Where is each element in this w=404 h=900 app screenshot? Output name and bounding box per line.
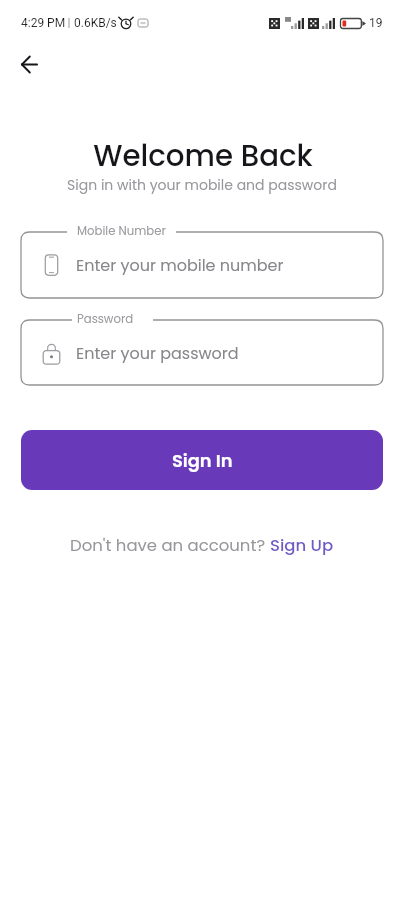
staticText: Enter your mobile number xyxy=(76,254,284,276)
button[interactable]: Sign In xyxy=(21,430,383,490)
staticText: Password xyxy=(77,311,134,327)
staticText: 4:29 PM xyxy=(21,16,66,30)
staticText: Sign In xyxy=(172,448,233,473)
button[interactable]: Back xyxy=(5,40,53,88)
staticText: Don't have an account? xyxy=(70,534,270,557)
button[interactable]: Sign Up xyxy=(270,534,334,557)
staticText: Enter your password xyxy=(76,342,239,364)
staticText: Welcome Back xyxy=(1,135,404,176)
staticText: 19 xyxy=(369,16,383,30)
staticText: Mobile Number xyxy=(77,223,166,239)
staticText: Sign in with your mobile and password xyxy=(0,175,404,195)
staticText: 0.6KB/s xyxy=(74,16,117,30)
